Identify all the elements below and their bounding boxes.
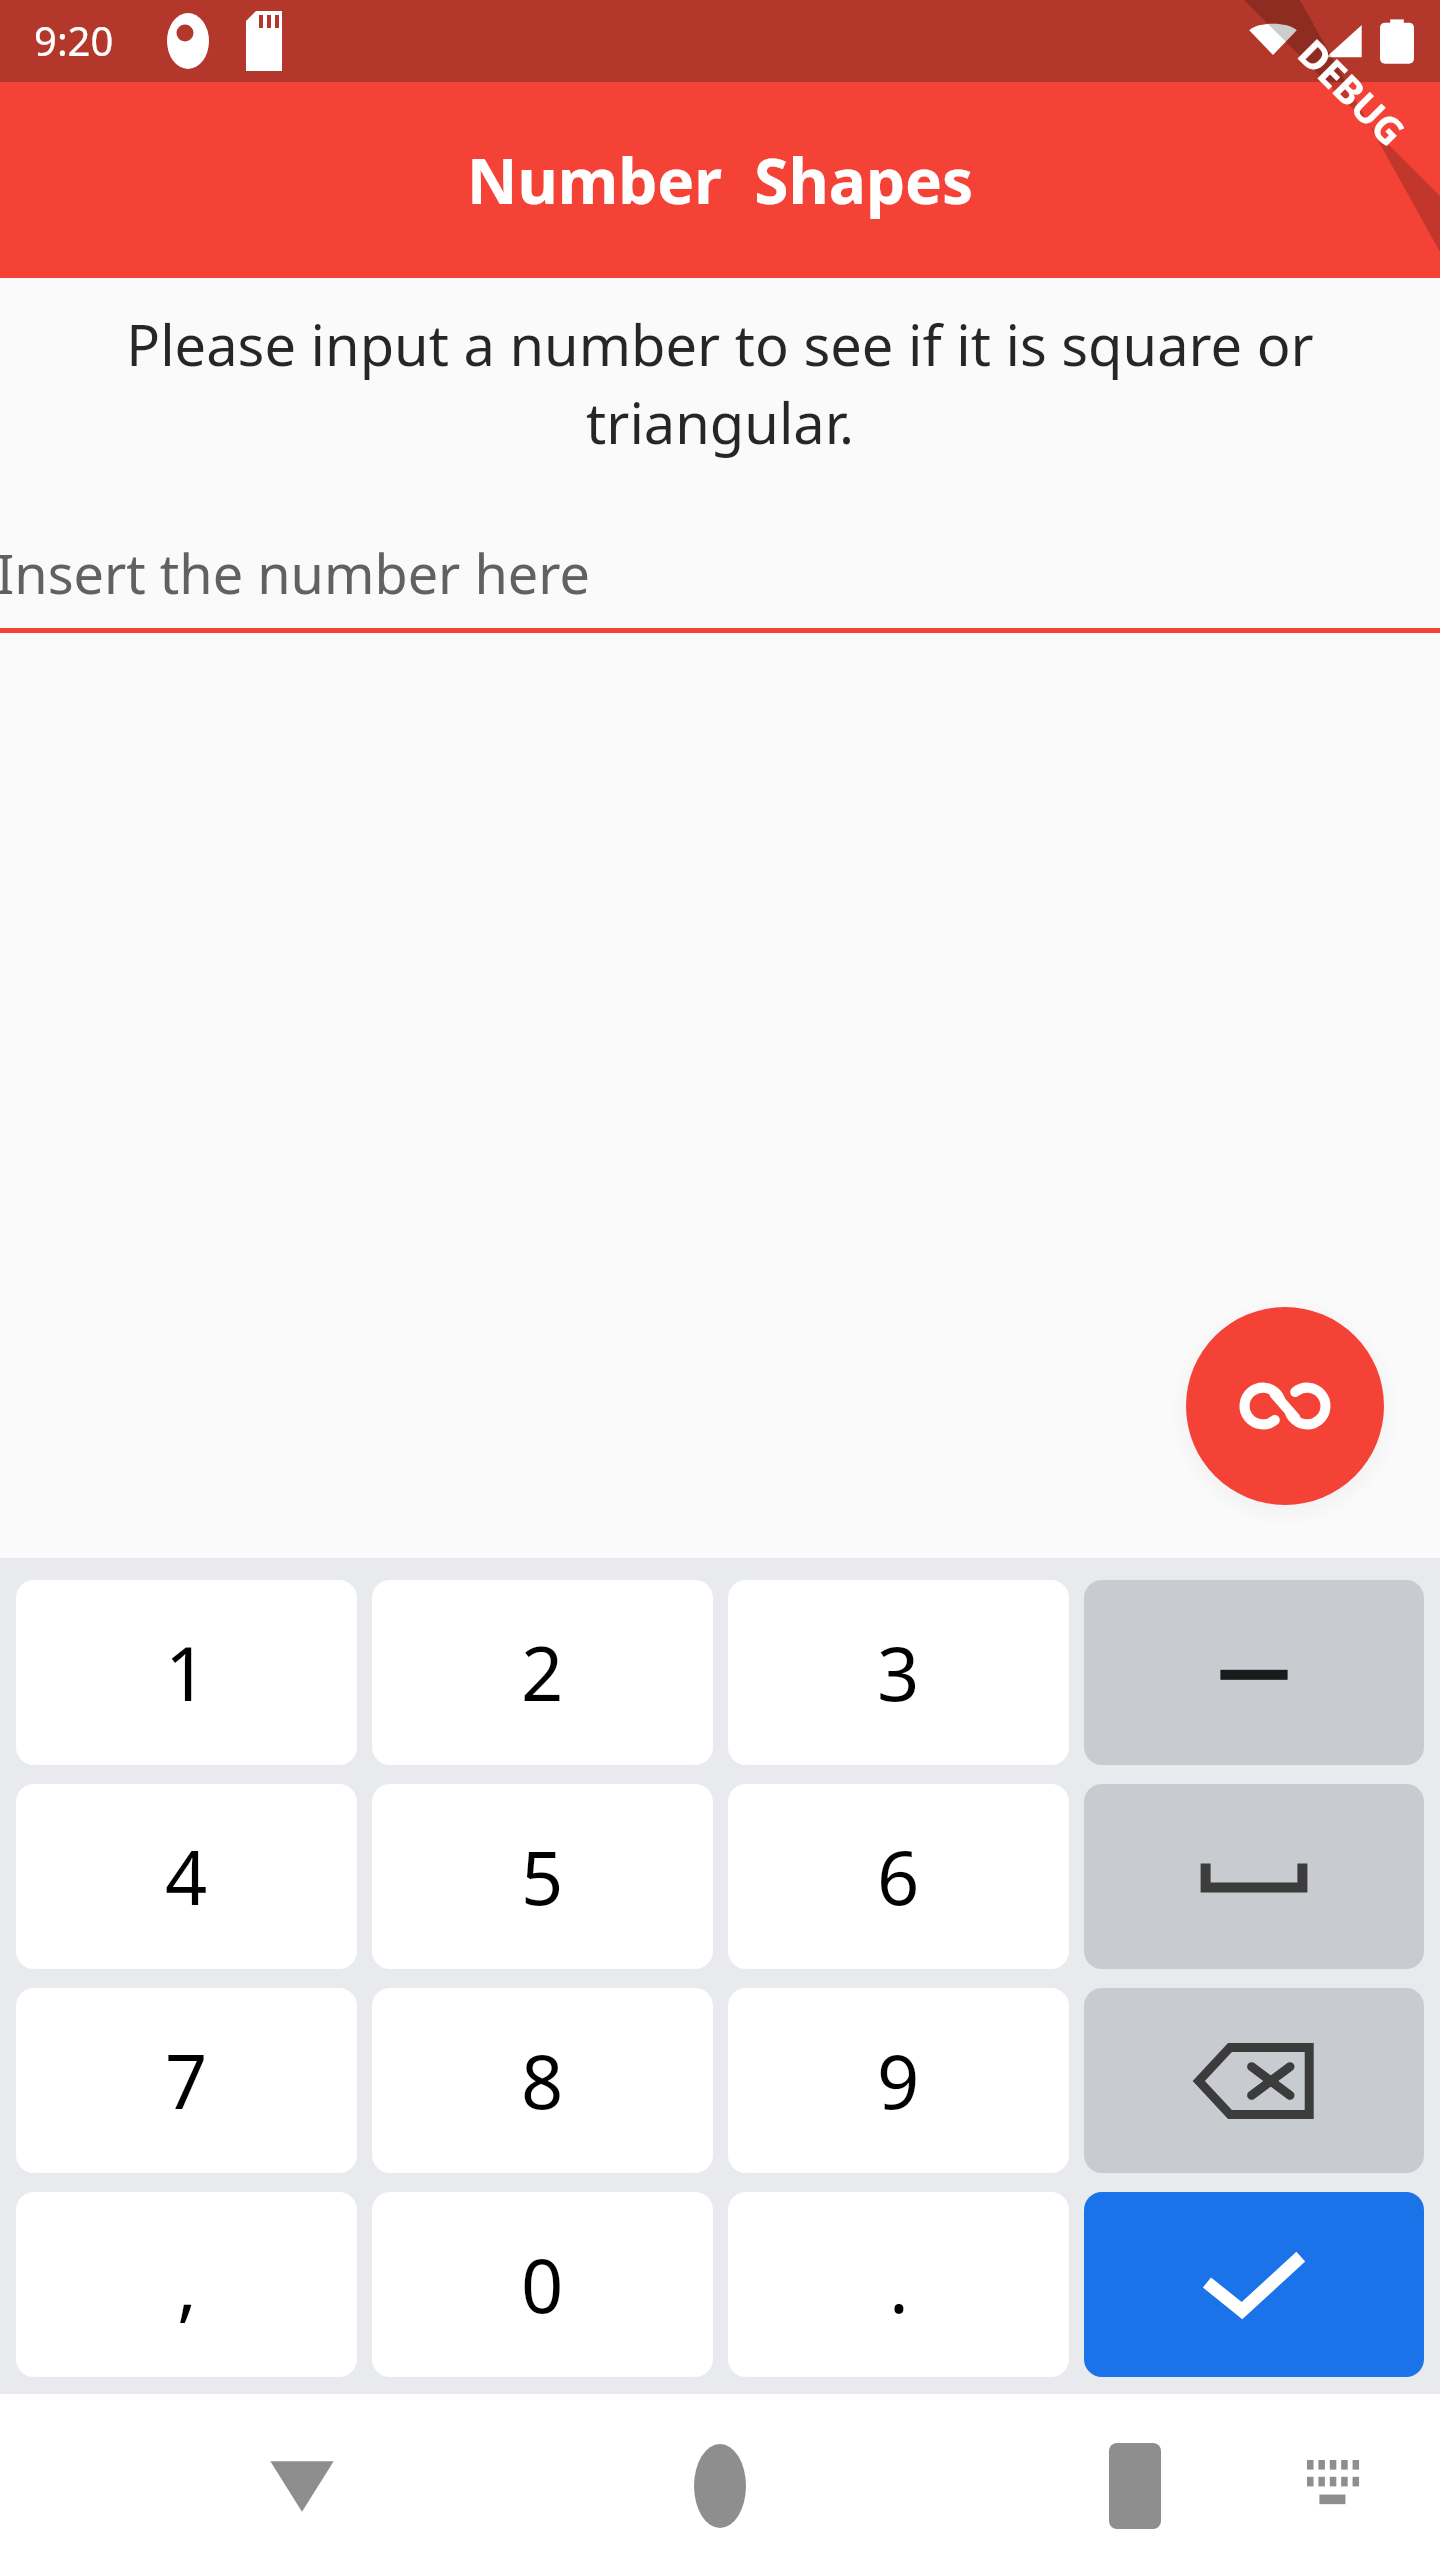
button[interactable]: 0 xyxy=(372,2192,713,2377)
staticText: , xyxy=(177,2234,197,2335)
staticText: 9:20 xyxy=(34,13,114,67)
staticText: 6 xyxy=(877,1826,920,1927)
staticText: 8 xyxy=(521,2030,564,2131)
button[interactable]: Recent apps xyxy=(1065,2416,1205,2556)
button[interactable]: 2 xyxy=(372,1580,713,1765)
button[interactable]: Minus xyxy=(1084,1580,1424,1765)
button[interactable]: Switch keyboard xyxy=(1288,2434,1388,2534)
button[interactable]: , xyxy=(16,2192,357,2377)
button[interactable]: Insert the number here xyxy=(0,513,1440,633)
staticText: 1 xyxy=(165,1622,208,1723)
button[interactable]: 8 xyxy=(372,1988,713,2173)
button[interactable]: Backspace xyxy=(1084,1988,1424,2173)
button[interactable]: 5 xyxy=(372,1784,713,1969)
staticText: . xyxy=(889,2234,909,2335)
staticText: 7 xyxy=(165,2030,208,2131)
button[interactable]: 6 xyxy=(728,1784,1069,1969)
button[interactable]: 7 xyxy=(16,1988,357,2173)
button[interactable]: Home xyxy=(650,2416,790,2556)
button[interactable]: 1 xyxy=(16,1580,357,1765)
staticText: Please input a number to see if it is sq… xyxy=(60,306,1380,461)
staticText: DEBUG xyxy=(1288,27,1417,157)
button[interactable]: 4 xyxy=(16,1784,357,1969)
button[interactable]: Space xyxy=(1084,1784,1424,1969)
button[interactable]: . xyxy=(728,2192,1069,2377)
button[interactable]: Back xyxy=(232,2416,372,2556)
staticText: 9 xyxy=(877,2030,920,2131)
staticText: 0 xyxy=(521,2234,564,2335)
staticText: Insert the number here xyxy=(0,536,590,610)
staticText: 2 xyxy=(521,1622,564,1723)
staticText: Number Shapes xyxy=(467,138,974,222)
button[interactable]: 9 xyxy=(728,1988,1069,2173)
staticText: 3 xyxy=(877,1622,920,1723)
staticText: 4 xyxy=(165,1826,208,1927)
button[interactable]: Enter xyxy=(1084,2192,1424,2377)
button[interactable]: Calculate xyxy=(1186,1307,1384,1505)
staticText: 5 xyxy=(521,1826,564,1927)
button[interactable]: 3 xyxy=(728,1580,1069,1765)
